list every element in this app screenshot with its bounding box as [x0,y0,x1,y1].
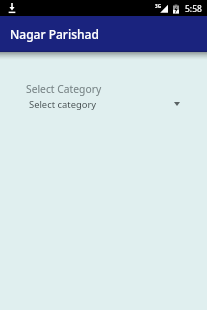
staticText: 3G [155,3,161,9]
button[interactable]: Select category [0,96,207,112]
staticText: Select category [29,98,97,111]
staticText: Nagar Parishad [10,26,99,42]
staticText: Select Category [26,82,102,96]
other: Download [8,3,16,13]
staticText: 5:58 [185,3,202,15]
